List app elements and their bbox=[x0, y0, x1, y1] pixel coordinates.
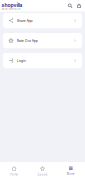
button[interactable]: Home bbox=[0, 162, 28, 180]
button[interactable]: More bbox=[57, 162, 85, 180]
staticText: Share App bbox=[17, 18, 33, 23]
staticText: ONLINE SHOPPING APP bbox=[1, 8, 20, 10]
button[interactable]: Login bbox=[3, 53, 82, 68]
button[interactable]: Search bbox=[66, 0, 75, 11]
button[interactable]: Rate Our App bbox=[3, 33, 82, 48]
staticText: Rate Our App bbox=[17, 38, 38, 43]
button[interactable]: Cart bbox=[75, 0, 84, 11]
button[interactable]: Share App bbox=[3, 13, 82, 28]
staticText: shopvilla bbox=[1, 2, 22, 8]
staticText: Home bbox=[10, 173, 18, 176]
staticText: More bbox=[67, 172, 75, 176]
staticText: Login bbox=[17, 58, 26, 63]
staticText: Saved bbox=[37, 173, 47, 176]
button[interactable]: Saved bbox=[28, 162, 57, 180]
